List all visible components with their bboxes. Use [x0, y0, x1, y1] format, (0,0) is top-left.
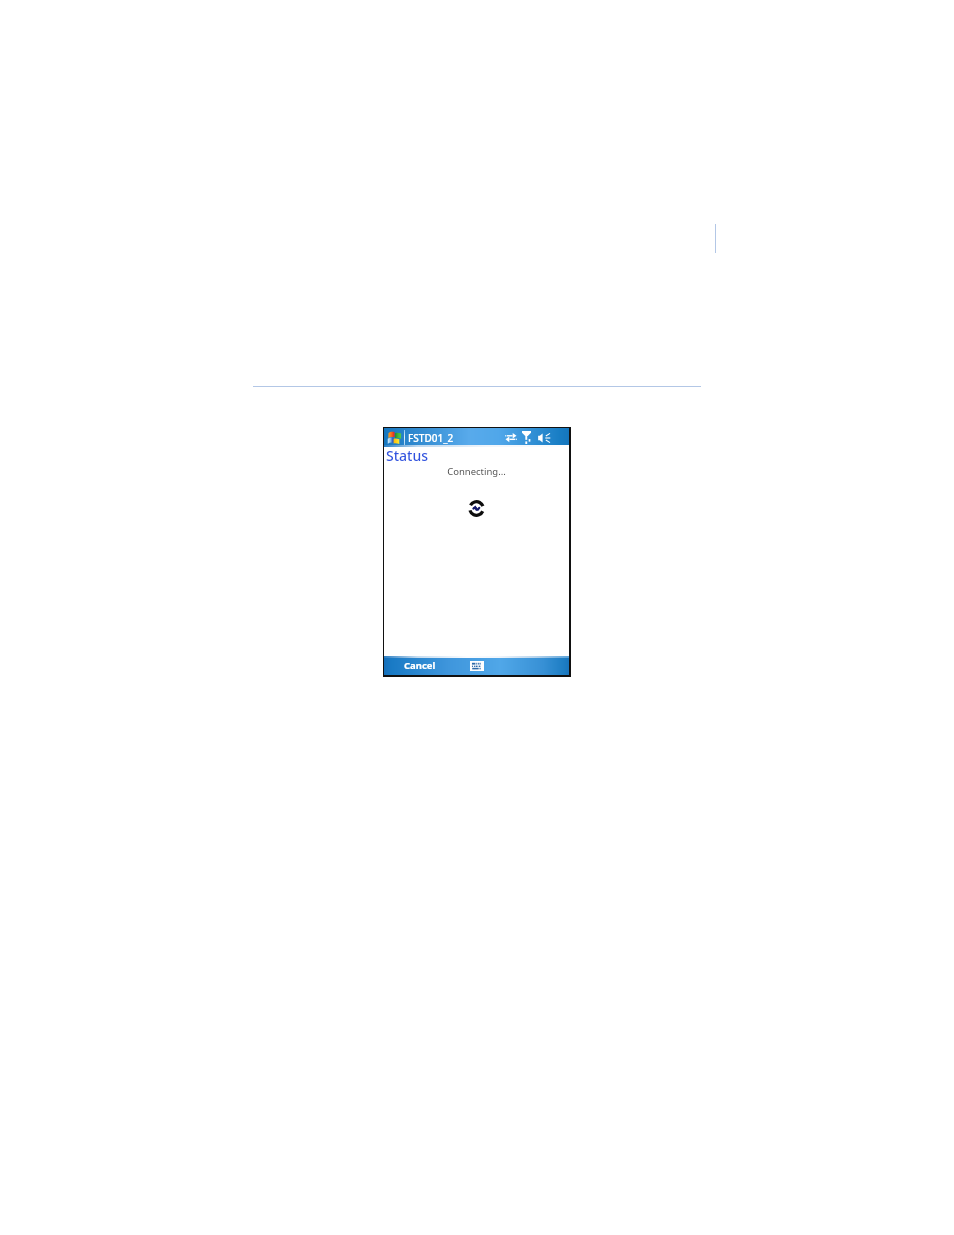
staticText: FSTD01_2 — [408, 431, 454, 445]
staticText: Status — [386, 446, 429, 465]
button[interactable]: Connectivity — [505, 428, 517, 447]
button[interactable]: Cancel — [384, 656, 448, 675]
button[interactable]: Volume — [538, 428, 552, 447]
staticText: Cancel — [404, 659, 436, 672]
button[interactable]: Keyboard — [466, 658, 488, 674]
button[interactable]: Signal strength — [522, 428, 531, 447]
button[interactable]: Start menu — [384, 428, 404, 447]
staticText: Connecting... — [384, 465, 569, 478]
